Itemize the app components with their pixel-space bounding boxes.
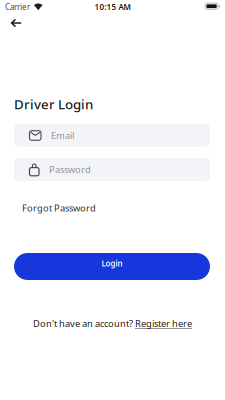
button[interactable]: Email <box>14 124 210 147</box>
staticText: Login <box>101 258 122 269</box>
button[interactable]: Password <box>14 158 210 181</box>
staticText: Carrier <box>5 2 30 12</box>
staticText: Driver Login <box>14 95 93 113</box>
staticText: Forgot Password <box>22 202 96 214</box>
button[interactable]: Forgot Password <box>22 203 96 213</box>
staticText: 10:15 AM <box>94 2 130 12</box>
button[interactable]: Don't have an account? Register here <box>33 318 192 328</box>
button[interactable]: Back <box>0 13 22 27</box>
staticText: Password <box>49 163 91 176</box>
staticText: Don't have an account? Register here <box>33 317 192 330</box>
button[interactable]: Login <box>14 253 210 280</box>
staticText: Email <box>51 129 74 142</box>
